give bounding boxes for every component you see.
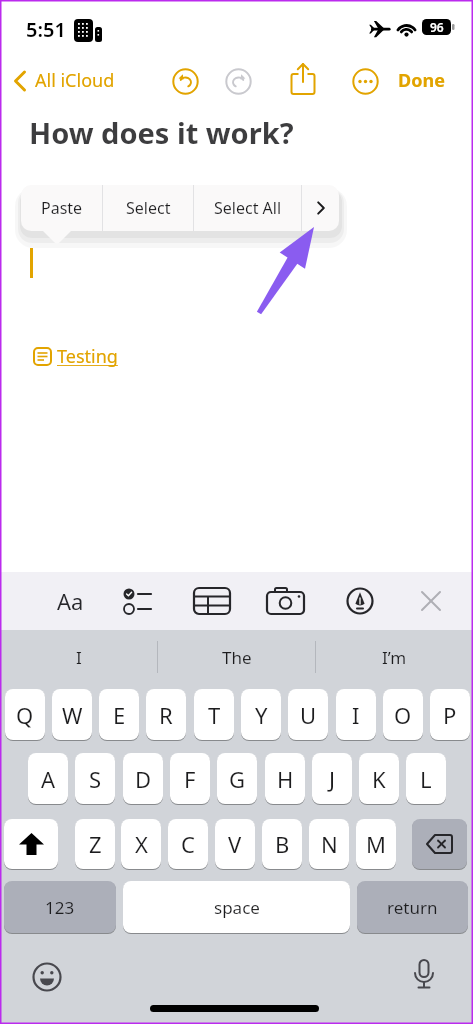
staticText: F — [184, 764, 196, 794]
button[interactable]: I — [336, 689, 376, 740]
staticText: B — [275, 829, 290, 859]
staticText: U — [300, 700, 317, 730]
staticText: I — [352, 700, 360, 730]
staticText: W — [62, 700, 83, 730]
staticText: How does it work? — [29, 113, 294, 152]
button[interactable]: Aa — [48, 586, 92, 616]
button[interactable]: Q — [5, 689, 45, 740]
button[interactable]: T — [194, 689, 234, 740]
staticText: S — [89, 764, 102, 794]
staticText: space — [214, 896, 260, 919]
staticText: 123 — [45, 896, 75, 919]
staticText: C — [181, 829, 195, 859]
button[interactable]: E — [99, 689, 139, 740]
button[interactable] — [32, 962, 62, 992]
staticText: N — [321, 829, 338, 859]
button[interactable]: U — [288, 689, 328, 740]
button[interactable]: I — [0, 630, 157, 684]
button[interactable]: P — [430, 689, 470, 740]
staticText: Select — [126, 197, 171, 219]
staticText: Q — [16, 700, 34, 730]
staticText: R — [159, 700, 173, 730]
button[interactable]: X — [121, 819, 161, 869]
staticText: Y — [255, 700, 268, 730]
button[interactable]: S — [75, 753, 115, 804]
staticText: E — [113, 700, 126, 730]
staticText: I — [76, 646, 82, 669]
staticText: L — [420, 764, 432, 794]
button[interactable] — [266, 587, 306, 615]
staticText: D — [135, 764, 152, 794]
button[interactable]: W — [52, 689, 92, 740]
button[interactable]: A — [28, 753, 68, 804]
button[interactable] — [225, 68, 252, 95]
button[interactable] — [412, 819, 467, 869]
staticText: return — [387, 896, 438, 919]
staticText: Testing — [57, 344, 118, 369]
button[interactable]: Testing — [30, 343, 130, 371]
staticText: Paste — [41, 197, 83, 219]
staticText: All iCloud — [35, 68, 115, 93]
button[interactable]: Y — [241, 689, 281, 740]
staticText: G — [229, 764, 246, 794]
button[interactable]: C — [168, 819, 208, 869]
button[interactable]: Z — [75, 819, 115, 869]
button[interactable]: V — [215, 819, 255, 869]
button[interactable]: Done — [398, 68, 445, 93]
button[interactable] — [352, 68, 379, 95]
button[interactable]: I’m — [316, 630, 473, 684]
button[interactable]: R — [146, 689, 186, 740]
button[interactable]: F — [170, 753, 210, 804]
button[interactable]: Paste — [21, 185, 102, 231]
button[interactable] — [172, 68, 199, 95]
button[interactable]: Select — [103, 185, 193, 231]
button[interactable]: H — [265, 753, 305, 804]
button[interactable]: The — [158, 630, 315, 684]
button[interactable]: M — [356, 819, 396, 869]
staticText: M — [366, 829, 386, 859]
staticText: X — [135, 829, 148, 859]
button[interactable]: G — [217, 753, 257, 804]
staticText: Z — [89, 829, 102, 859]
button[interactable]: B — [262, 819, 302, 869]
staticText: H — [277, 764, 294, 794]
staticText: O — [394, 700, 412, 730]
staticText: K — [372, 764, 386, 794]
button[interactable] — [346, 587, 374, 615]
button[interactable]: L — [406, 753, 446, 804]
button[interactable] — [420, 590, 442, 612]
staticText: P — [443, 700, 457, 730]
button[interactable] — [122, 586, 155, 616]
button[interactable] — [302, 185, 339, 231]
staticText: A — [41, 764, 56, 794]
staticText: V — [228, 829, 242, 859]
button[interactable]: return — [357, 881, 468, 933]
staticText: 96 — [430, 19, 444, 35]
staticText: The — [222, 646, 252, 669]
staticText: Aa — [57, 586, 84, 616]
button[interactable]: Select All — [194, 185, 301, 231]
button[interactable]: All iCloud — [10, 66, 135, 96]
button[interactable]: 123 — [4, 881, 116, 933]
button[interactable]: O — [383, 689, 423, 740]
staticText: I’m — [382, 646, 407, 669]
button[interactable]: space — [123, 881, 350, 933]
button[interactable] — [412, 959, 436, 993]
button[interactable] — [290, 63, 317, 96]
staticText: Select All — [214, 197, 282, 219]
staticText: Done — [398, 68, 445, 93]
button[interactable] — [193, 586, 231, 616]
button[interactable]: N — [309, 819, 349, 869]
staticText: J — [329, 764, 336, 794]
button[interactable]: D — [123, 753, 163, 804]
staticText: T — [208, 700, 221, 730]
staticText: 5:51 — [26, 16, 66, 43]
button[interactable]: K — [359, 753, 399, 804]
button[interactable] — [4, 819, 58, 869]
button[interactable]: J — [312, 753, 352, 804]
